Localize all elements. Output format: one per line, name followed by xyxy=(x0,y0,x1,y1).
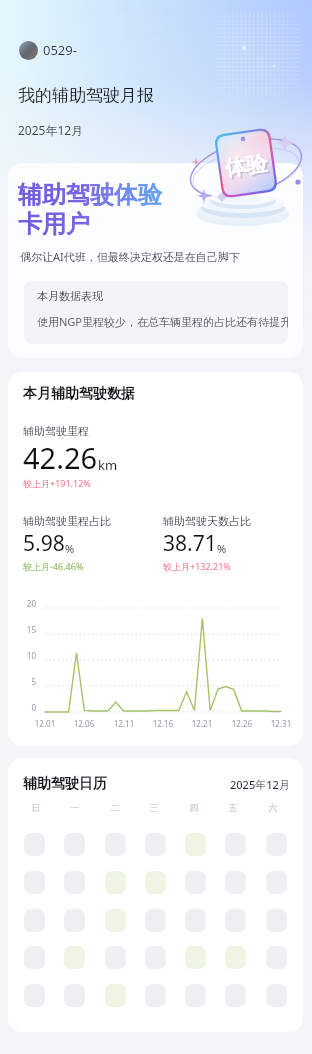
staticText: 辅助驾驶体验 卡用户 xyxy=(18,180,162,239)
button[interactable] xyxy=(225,871,246,894)
button[interactable] xyxy=(64,833,85,856)
button[interactable] xyxy=(105,871,126,894)
staticText: 辅助驾驶日历 xyxy=(23,775,107,793)
button[interactable] xyxy=(64,984,85,1007)
button[interactable] xyxy=(185,833,206,856)
button[interactable] xyxy=(266,984,287,1007)
staticText: 12.16 xyxy=(147,718,179,729)
staticText: 12.06 xyxy=(68,718,100,729)
button[interactable] xyxy=(225,984,246,1007)
staticText: 5 xyxy=(23,676,36,687)
staticText: 较上月+132.21% xyxy=(163,560,231,572)
staticText: 20 xyxy=(23,598,36,609)
staticText: 本月数据表现 xyxy=(37,289,103,303)
staticText: 10 xyxy=(23,650,36,661)
staticText: 六 xyxy=(261,802,285,813)
staticText: 5.98 xyxy=(23,529,65,558)
button[interactable] xyxy=(225,833,246,856)
staticText: 二 xyxy=(103,802,127,813)
button[interactable] xyxy=(145,984,166,1007)
staticText: km xyxy=(98,456,118,474)
button[interactable] xyxy=(105,946,126,969)
staticText: 体验 xyxy=(223,150,269,182)
staticText: 38.71 xyxy=(163,529,217,558)
staticText: 42.26 xyxy=(23,438,98,477)
staticText: 15 xyxy=(23,624,36,635)
button[interactable] xyxy=(24,984,45,1007)
staticText: 2025年12月 xyxy=(18,122,84,138)
staticText: 12.21 xyxy=(186,718,218,729)
button[interactable] xyxy=(24,909,45,932)
button[interactable] xyxy=(145,946,166,969)
staticText: 0529- xyxy=(43,41,77,59)
button[interactable] xyxy=(64,946,85,969)
button[interactable] xyxy=(145,909,166,932)
button[interactable] xyxy=(266,833,287,856)
staticText: 12.11 xyxy=(108,718,140,729)
button[interactable] xyxy=(64,909,85,932)
staticText: 五 xyxy=(221,802,245,813)
staticText: 日 xyxy=(24,802,48,813)
staticText: 较上月+191.12% xyxy=(23,477,91,489)
button[interactable] xyxy=(185,946,206,969)
button[interactable] xyxy=(225,946,246,969)
staticText: 本月辅助驾驶数据 xyxy=(23,385,135,403)
button[interactable] xyxy=(225,909,246,932)
staticText: % xyxy=(217,541,227,556)
button[interactable] xyxy=(145,871,166,894)
staticText: 较上月-46.46% xyxy=(23,560,84,572)
staticText: 12.31 xyxy=(265,718,297,729)
staticText: 0 xyxy=(23,702,36,713)
staticText: 三 xyxy=(142,802,166,813)
staticText: 一 xyxy=(63,802,87,813)
staticText: 辅助驾驶天数占比 xyxy=(163,514,251,528)
staticText: 辅助驾驶里程 xyxy=(23,424,89,438)
button[interactable] xyxy=(64,871,85,894)
button[interactable] xyxy=(24,833,45,856)
staticText: 体验 xyxy=(226,152,271,183)
staticText: 2025年12月 xyxy=(230,777,290,792)
staticText: 四 xyxy=(182,802,206,813)
button[interactable] xyxy=(266,871,287,894)
staticText: 12.01 xyxy=(29,718,61,729)
staticText: % xyxy=(65,541,75,556)
button[interactable] xyxy=(266,909,287,932)
staticText: 我的辅助驾驶月报 xyxy=(18,85,154,106)
button[interactable] xyxy=(24,871,45,894)
staticText: 偶尔让AI代班，但最终决定权还是在自己脚下 xyxy=(20,249,240,264)
staticText: 使用NGP里程较少，在总车辆里程的占比还有待提升 xyxy=(37,314,288,329)
button[interactable] xyxy=(185,984,206,1007)
button[interactable] xyxy=(105,909,126,932)
button[interactable] xyxy=(24,946,45,969)
button[interactable] xyxy=(266,946,287,969)
button[interactable] xyxy=(145,833,166,856)
staticText: 12.26 xyxy=(226,718,258,729)
button[interactable] xyxy=(185,909,206,932)
staticText: 辅助驾驶里程占比 xyxy=(23,514,111,528)
button[interactable] xyxy=(105,984,126,1007)
button[interactable]: 0529- xyxy=(19,41,77,60)
button[interactable] xyxy=(185,871,206,894)
button[interactable] xyxy=(105,833,126,856)
